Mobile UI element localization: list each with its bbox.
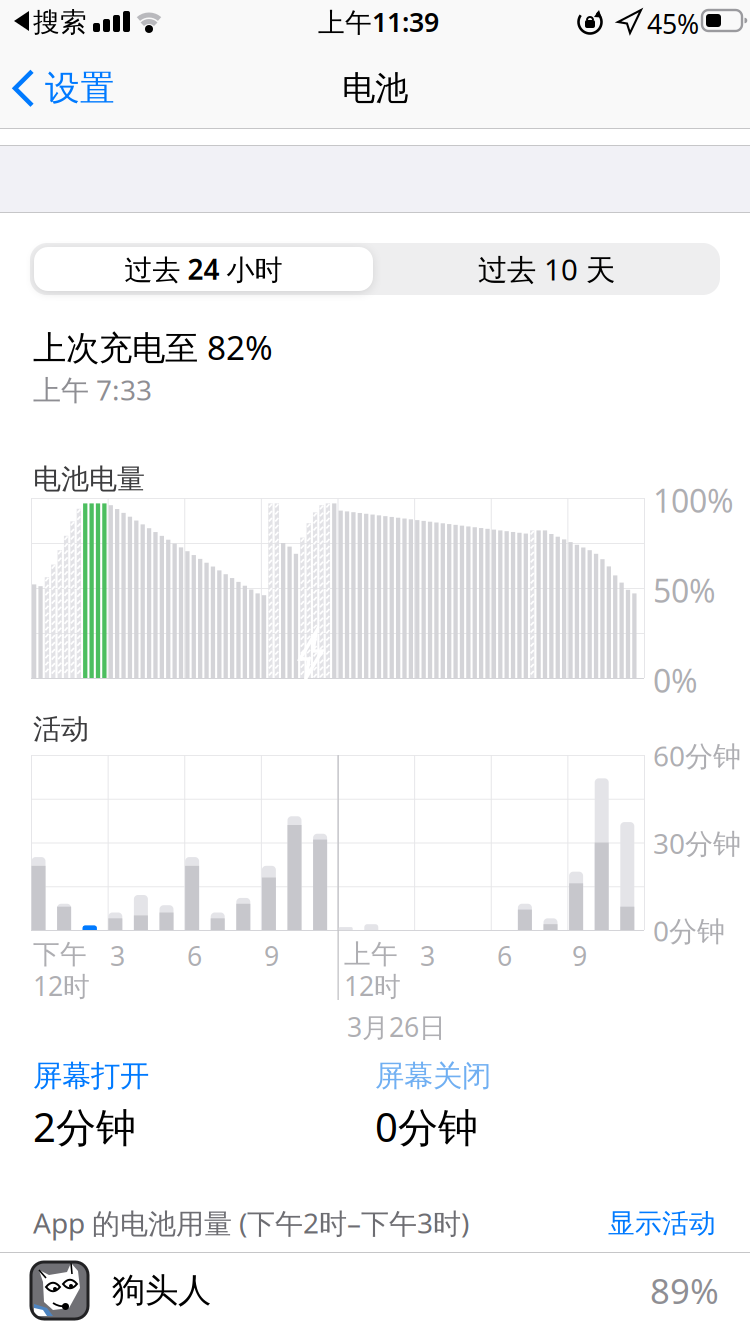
staticText: 89%: [650, 1267, 719, 1313]
staticText: 过去 24 小时: [124, 250, 282, 288]
staticText: 50%: [653, 569, 716, 611]
staticText: 屏幕打开: [33, 1058, 149, 1094]
staticText: App 的电池用量 (下午2时–下午3时): [33, 1204, 469, 1241]
staticText: 上次充电至 82%: [33, 325, 273, 369]
staticText: 6: [187, 938, 202, 973]
staticText: 屏幕关闭: [375, 1058, 491, 1094]
staticText: 2分钟: [33, 1100, 136, 1153]
staticText: 电池: [342, 68, 408, 109]
staticText: 3月26日: [347, 1009, 446, 1044]
staticText: 3: [420, 938, 435, 973]
staticText: 12时: [344, 968, 401, 1003]
staticText: 电池电量: [33, 462, 145, 496]
staticText: 上午: [344, 938, 398, 971]
staticText: 60分钟: [653, 737, 741, 774]
staticText: 显示活动: [608, 1207, 716, 1240]
staticText: 6: [497, 938, 512, 973]
staticText: 搜索: [33, 6, 87, 39]
staticText: 设置: [45, 67, 115, 110]
button[interactable]: 屏幕打开: [33, 1058, 149, 1094]
button[interactable]: 设置: [12, 67, 115, 110]
staticText: 100%: [653, 479, 734, 521]
staticText: 9: [572, 938, 587, 973]
button[interactable]: 狗头人: [31, 1262, 719, 1319]
staticText: 45%: [647, 6, 699, 41]
staticText: 活动: [33, 712, 89, 746]
staticText: 0分钟: [653, 912, 725, 949]
staticText: 0分钟: [375, 1100, 478, 1153]
staticText: 9: [264, 938, 279, 973]
staticText: 30分钟: [653, 824, 741, 862]
staticText: 0%: [653, 659, 698, 701]
staticText: 上午 7:33: [33, 371, 152, 408]
staticText: 12时: [33, 968, 90, 1003]
button[interactable]: 过去 10 天: [377, 247, 716, 291]
staticText: 上午11:39: [318, 4, 439, 39]
staticText: 狗头人: [112, 1270, 211, 1311]
staticText: 过去 10 天: [478, 249, 615, 288]
staticText: 下午: [33, 938, 87, 971]
staticText: 3: [110, 938, 125, 973]
button[interactable]: 过去 24 小时: [34, 247, 373, 291]
button[interactable]: 屏幕关闭: [375, 1058, 491, 1094]
button[interactable]: 显示活动: [608, 1207, 716, 1240]
